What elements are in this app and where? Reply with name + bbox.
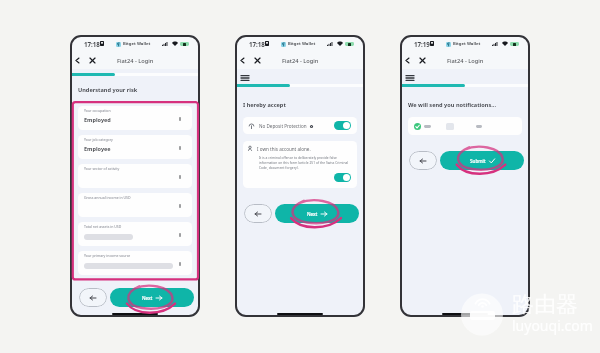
- button[interactable]: Your occupation: [78, 106, 192, 130]
- button[interactable]: Back: [244, 204, 272, 223]
- staticText: Total net assets in USD: [84, 224, 122, 229]
- button[interactable]: Toggle: [334, 121, 351, 130]
- button[interactable]: Menu: [400, 71, 419, 84]
- staticText: I own this account alone.: [257, 146, 311, 152]
- button[interactable]: Back: [70, 53, 85, 68]
- button[interactable]: I own this account alone.: [243, 141, 357, 188]
- staticText: It is a criminal offence to deliberately…: [259, 155, 352, 170]
- staticText: Bitget Wallet: [453, 41, 481, 47]
- button[interactable]: Your sector of activity: [78, 164, 192, 188]
- button[interactable]: Back: [235, 53, 250, 68]
- staticText: 17:18: [84, 40, 100, 48]
- button[interactable]: Your primary income source: [78, 251, 192, 275]
- staticText: Employed: [84, 116, 111, 123]
- staticText: Fiat24 - Login: [447, 57, 484, 65]
- staticText: We will send you notifications...: [408, 101, 496, 109]
- button[interactable]: Your job category: [78, 135, 192, 159]
- staticText: Next: [142, 295, 153, 301]
- button[interactable]: Total net assets in USD: [78, 222, 192, 246]
- button[interactable]: Close: [415, 53, 430, 68]
- staticText: 路由器: [512, 291, 578, 319]
- staticText: Employee: [84, 145, 111, 152]
- button[interactable]: Submit: [440, 151, 524, 170]
- staticText: Fiat24 - Login: [117, 57, 154, 65]
- button[interactable]: Close: [85, 53, 100, 68]
- staticText: Bitget Wallet: [288, 41, 316, 47]
- staticText: Bitget Wallet: [123, 41, 151, 47]
- staticText: Your occupation: [84, 108, 111, 113]
- button[interactable]: [408, 117, 522, 135]
- button[interactable]: Back: [409, 151, 437, 170]
- button[interactable]: No Deposit Protection: [243, 117, 357, 134]
- staticText: Gross annual income in USD: [84, 195, 131, 200]
- button[interactable]: Gross annual income in USD: [78, 193, 192, 217]
- staticText: Your primary income source: [84, 253, 131, 258]
- staticText: No Deposit Protection: [259, 123, 307, 129]
- staticText: 17:19: [414, 40, 430, 48]
- button[interactable]: Menu: [235, 71, 254, 84]
- staticText: Your sector of activity: [84, 166, 120, 171]
- button[interactable]: Next: [275, 204, 359, 223]
- button[interactable]: Back: [400, 53, 415, 68]
- staticText: I hereby accept: [243, 101, 286, 109]
- staticText: luyouqi.com: [512, 316, 593, 335]
- staticText: Understand your risk: [78, 86, 138, 94]
- staticText: Fiat24 - Login: [282, 57, 319, 65]
- staticText: Next: [307, 211, 318, 217]
- button[interactable]: Next: [110, 288, 194, 307]
- button[interactable]: Back: [79, 288, 107, 307]
- button[interactable]: Close: [250, 53, 265, 68]
- staticText: 17:18: [249, 40, 265, 48]
- button[interactable]: Toggle: [334, 173, 351, 182]
- staticText: Submit: [470, 158, 486, 164]
- staticText: Your job category: [84, 137, 113, 142]
